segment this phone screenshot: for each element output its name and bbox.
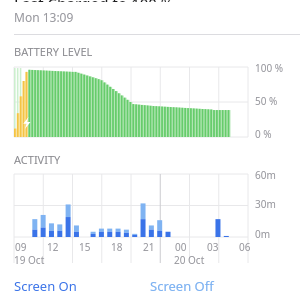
button[interactable]: Screen Off (150, 277, 286, 300)
staticText: Screen On (14, 277, 77, 295)
staticText: 15 (79, 240, 91, 254)
staticText: 20 Oct (174, 253, 205, 267)
staticText: Mon 13:09 (14, 9, 74, 25)
staticText: 100 % (255, 61, 284, 75)
staticText: 60m (255, 168, 276, 182)
staticText: 0m (255, 227, 271, 241)
staticText: 19 Oct (14, 253, 45, 267)
staticText: Screen Off (150, 277, 214, 295)
button[interactable]: 100 % (0, 63, 300, 147)
staticText: ACTIVITY (14, 152, 61, 167)
staticText: 12 (47, 240, 59, 254)
button[interactable]: 60m (0, 170, 300, 265)
staticText: BATTERY LEVEL (14, 44, 93, 59)
staticText: 00 (175, 240, 187, 254)
staticText: 30m (255, 197, 276, 211)
staticText: 50 % (255, 94, 278, 108)
staticText: 06 (239, 240, 251, 254)
button[interactable]: Screen On (14, 277, 150, 300)
staticText: 18 (111, 240, 123, 254)
staticText: 0 % (255, 127, 272, 141)
staticText: Last Charged to 100 % (14, 0, 174, 2)
staticText: 09 (15, 240, 27, 254)
staticText: 21 (143, 240, 155, 254)
staticText: 03 (207, 240, 219, 254)
